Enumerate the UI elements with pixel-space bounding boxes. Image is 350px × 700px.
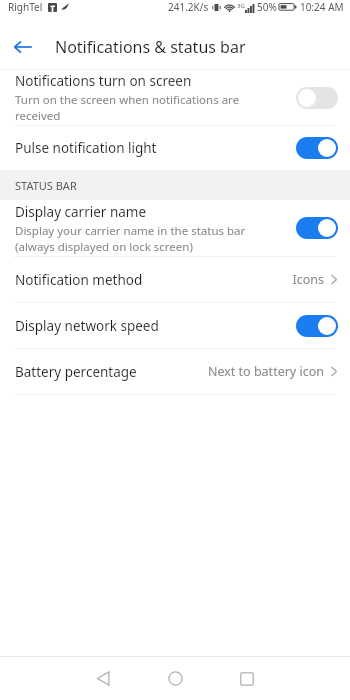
staticText: 10:24 AM xyxy=(300,0,344,14)
staticText: Display carrier name xyxy=(15,203,147,221)
button[interactable]: Display network speed xyxy=(0,303,350,348)
button[interactable]: Notification method xyxy=(0,257,350,302)
button[interactable]: Back xyxy=(67,657,139,700)
button[interactable]: Battery percentage xyxy=(0,349,350,394)
button[interactable]: Notifications turn on screen xyxy=(0,70,350,125)
staticText: Pulse notification light xyxy=(15,139,157,157)
staticText: STATUS BAR xyxy=(15,178,77,193)
staticText: RighTel xyxy=(8,0,43,14)
staticText: Icons xyxy=(292,271,324,288)
button[interactable]: Off xyxy=(296,87,338,109)
staticText: Battery percentage xyxy=(15,363,137,381)
button[interactable]: Home xyxy=(139,657,211,700)
staticText: Display network speed xyxy=(15,317,159,335)
staticText: Next to battery icon xyxy=(207,363,324,380)
button[interactable]: On xyxy=(296,315,338,337)
staticText: 50% xyxy=(257,0,277,14)
staticText: Display your carrier name in the status … xyxy=(15,223,246,254)
button[interactable]: On xyxy=(296,137,338,159)
staticText: Notification method xyxy=(15,271,143,289)
staticText: Notifications turn on screen xyxy=(15,72,192,90)
button[interactable]: Icons xyxy=(292,271,338,288)
button[interactable]: Back xyxy=(0,24,46,70)
button[interactable]: Pulse notification light xyxy=(0,126,350,170)
staticText: 3G xyxy=(237,2,245,10)
staticText: Notifications & status bar xyxy=(55,36,246,58)
button[interactable]: Next to battery icon xyxy=(207,363,338,380)
staticText: 241.2K/s xyxy=(168,0,209,14)
staticText: Turn on the screen when notifications ar… xyxy=(15,92,240,123)
button[interactable]: Recents xyxy=(211,657,283,700)
button[interactable]: Display carrier name xyxy=(0,200,350,256)
button[interactable]: On xyxy=(296,217,338,239)
